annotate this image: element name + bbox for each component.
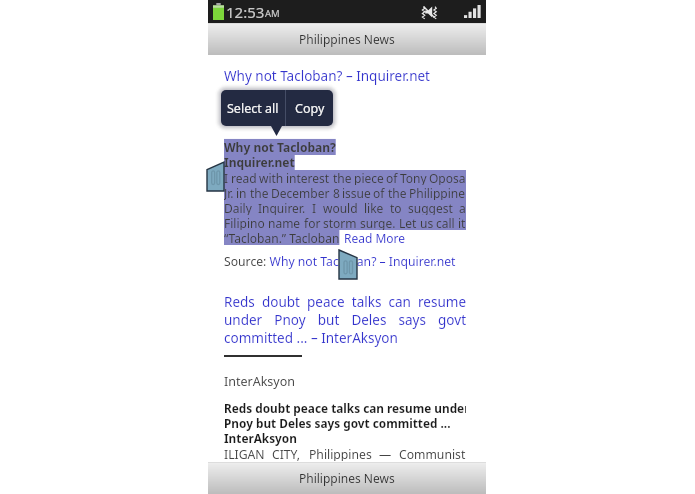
staticText: InterAksyon (224, 373, 296, 390)
staticText: 12:53 (226, 2, 265, 22)
staticText: Reds doubt peace talks can resume under … (224, 400, 466, 446)
staticText: the (388, 185, 407, 200)
button[interactable]: Copy (286, 90, 333, 126)
button[interactable]: Selection end handle (338, 249, 358, 280)
button[interactable]: Philippines News (208, 462, 486, 494)
staticText: name (268, 215, 301, 230)
staticText: Filipino (224, 215, 265, 230)
staticText: Philippines News (299, 470, 395, 486)
staticText: for (304, 215, 321, 230)
staticText: interest (286, 170, 330, 185)
staticText: Communist (399, 446, 466, 461)
staticText: I (224, 170, 229, 185)
staticText: storm (323, 215, 357, 230)
button[interactable]: Reds doubt peace talks can resume under … (224, 293, 466, 347)
staticText: the (250, 185, 269, 200)
other: Sound off (421, 4, 437, 20)
staticText: surge. (360, 215, 396, 230)
staticText: it (458, 215, 466, 230)
staticText: of (373, 185, 385, 200)
button[interactable]: Selection start handle (206, 161, 225, 192)
staticText: Inquirer. (258, 200, 306, 215)
button[interactable]: Select all (221, 90, 285, 126)
staticText: with (259, 170, 284, 185)
staticText: 8 (333, 185, 340, 200)
staticText: Tony (400, 170, 427, 185)
staticText: suggest (408, 200, 453, 215)
staticText: Select all (227, 100, 279, 117)
staticText: Philippines News (299, 31, 395, 47)
staticText: Let (399, 215, 417, 230)
staticText: Philippines (309, 446, 372, 461)
staticText: of (386, 170, 398, 185)
staticText: Why not Tacloban? Inquirer.net (224, 139, 336, 170)
staticText: in (236, 185, 247, 200)
button[interactable]: Why not Tacloban? – Inquirer.net (224, 67, 430, 85)
staticText: “Tacloban.” Tacloban (224, 230, 340, 245)
staticText: December (271, 185, 330, 200)
staticText: piece (354, 170, 384, 185)
staticText: AM (265, 7, 280, 20)
button[interactable]: Philippines News (208, 23, 486, 55)
staticText: us (420, 215, 434, 230)
staticText: Jr. (224, 185, 234, 200)
staticText: ILIGAN (224, 446, 265, 461)
staticText: like (364, 200, 384, 215)
staticText: CITY, (272, 446, 301, 461)
staticText: read (231, 170, 257, 185)
staticText: the (333, 170, 352, 185)
staticText: would (323, 200, 358, 215)
staticText: Copy (295, 100, 325, 117)
staticText: Philippine (409, 185, 466, 200)
staticText: Oposa (429, 170, 466, 185)
staticText: a (459, 200, 466, 215)
staticText: I (312, 200, 317, 215)
button[interactable]: Source: Why not Tacloban? – Inquirer.net (224, 253, 456, 270)
staticText: call (436, 215, 455, 230)
button[interactable]: Read More (344, 230, 406, 245)
staticText: to (390, 200, 402, 215)
staticText: Daily (224, 200, 252, 215)
staticText: — (379, 446, 392, 461)
staticText: issue (342, 185, 371, 200)
